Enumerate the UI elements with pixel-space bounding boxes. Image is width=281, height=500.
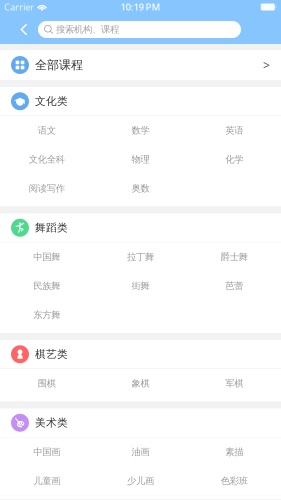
staticText: 文化全科 — [29, 154, 65, 165]
button[interactable]: 文化全科 — [0, 145, 94, 174]
staticText: 全部课程 — [35, 58, 83, 72]
button[interactable]: 象棋 — [94, 369, 187, 398]
button[interactable]: 儿童画 — [0, 466, 94, 495]
button[interactable]: 阅读写作 — [0, 174, 94, 203]
staticText: 语文 — [38, 125, 56, 136]
staticText: 中国舞 — [33, 251, 60, 263]
staticText: 化学 — [225, 154, 243, 165]
staticText: 阅读写作 — [29, 183, 65, 194]
staticText: 拉丁舞 — [127, 251, 154, 263]
button[interactable]: 搜索机构、课程 — [38, 21, 241, 38]
staticText: 英语 — [225, 125, 243, 136]
button[interactable]: 爵士舞 — [187, 242, 281, 271]
button[interactable]: 油画 — [94, 437, 187, 466]
button[interactable]: 数学 — [94, 116, 187, 145]
staticText: 中国画 — [33, 446, 60, 458]
staticText: Carrier — [4, 1, 34, 13]
staticText: 美术类 — [35, 416, 68, 429]
button[interactable]: 拉丁舞 — [94, 242, 187, 271]
button[interactable]: 语文 — [0, 116, 94, 145]
staticText: 象棋 — [131, 378, 149, 389]
button[interactable]: 军棋 — [187, 369, 281, 398]
staticText: 东方舞 — [33, 309, 60, 321]
button[interactable]: 返回 — [12, 17, 36, 41]
staticText: 芭蕾 — [225, 280, 243, 292]
button[interactable]: 少儿画 — [94, 466, 187, 495]
button[interactable]: 英语 — [187, 116, 281, 145]
staticText: > — [263, 57, 270, 73]
staticText: 素描 — [225, 446, 243, 458]
staticText: 爵士舞 — [221, 251, 248, 263]
button[interactable]: 素描 — [187, 437, 281, 466]
staticText: 民族舞 — [33, 280, 60, 292]
staticText: 文化类 — [35, 95, 68, 108]
button[interactable]: 街舞 — [94, 271, 187, 300]
button[interactable]: 民族舞 — [0, 271, 94, 300]
button[interactable]: 中国画 — [0, 437, 94, 466]
staticText: 10:19 PM — [120, 1, 160, 13]
staticText: 棋艺类 — [35, 348, 68, 361]
button[interactable]: 化学 — [187, 145, 281, 174]
button[interactable]: 全部课程 — [0, 50, 281, 80]
button[interactable]: 围棋 — [0, 369, 94, 398]
button[interactable]: 物理 — [94, 145, 187, 174]
staticText: 舞蹈类 — [35, 221, 68, 234]
button[interactable]: 东方舞 — [0, 300, 94, 329]
staticText: 数学 — [131, 125, 149, 136]
staticText: 搜索机构、课程 — [56, 24, 119, 35]
button[interactable]: 奥数 — [94, 174, 187, 203]
staticText: 围棋 — [38, 378, 56, 389]
staticText: 色彩班 — [221, 475, 248, 487]
staticText: 军棋 — [225, 378, 243, 389]
button[interactable]: 色彩班 — [187, 466, 281, 495]
staticText: 物理 — [131, 154, 149, 165]
staticText: 街舞 — [131, 280, 149, 292]
staticText: 儿童画 — [33, 475, 60, 487]
button[interactable]: 中国舞 — [0, 242, 94, 271]
staticText: 奥数 — [131, 183, 149, 194]
button[interactable]: 芭蕾 — [187, 271, 281, 300]
staticText: 少儿画 — [127, 475, 154, 487]
staticText: 油画 — [131, 446, 149, 458]
